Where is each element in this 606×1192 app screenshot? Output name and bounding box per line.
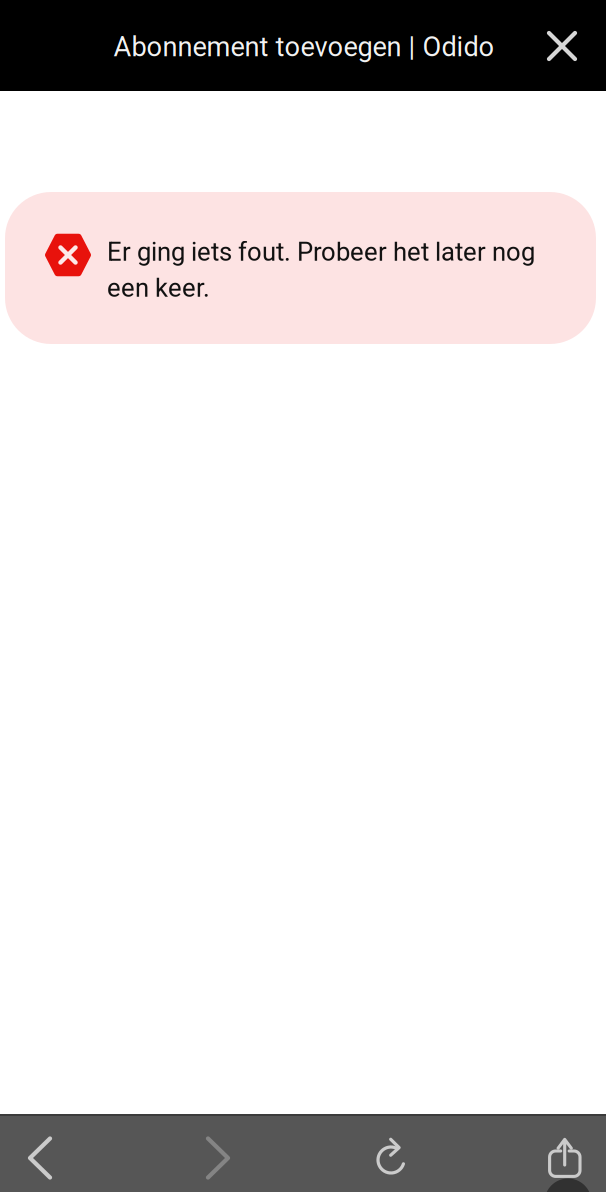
button[interactable]: Forward <box>173 1119 263 1192</box>
button[interactable]: Share <box>520 1119 606 1192</box>
staticText: een keer. <box>107 273 210 303</box>
button[interactable]: Close <box>527 11 597 81</box>
button[interactable]: Back <box>0 1119 85 1192</box>
staticText: Abonnement toevoegen | Odido <box>113 31 494 63</box>
button[interactable]: Reload <box>347 1120 437 1192</box>
staticText: Er ging iets fout. Probeer het later nog <box>107 237 535 267</box>
